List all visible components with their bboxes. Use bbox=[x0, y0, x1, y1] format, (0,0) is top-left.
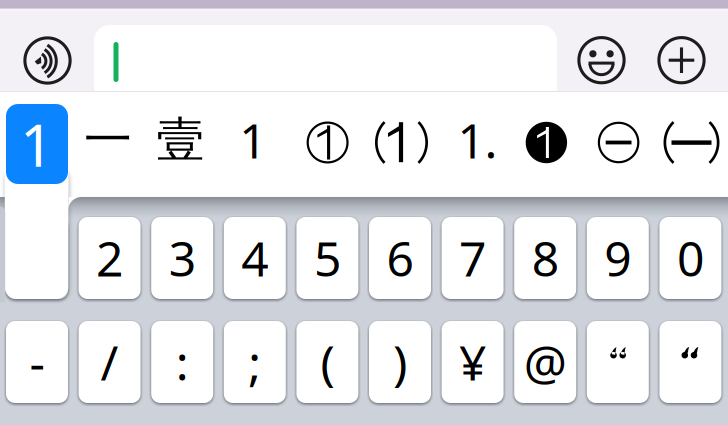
button[interactable]: Voice input bbox=[19, 32, 75, 88]
button[interactable]: ¥ bbox=[442, 321, 504, 403]
button[interactable]: 壹 bbox=[144, 100, 216, 180]
staticText: 7 bbox=[459, 226, 486, 290]
button[interactable]: Parenthesised yi bbox=[658, 102, 724, 182]
staticText: 1 bbox=[20, 105, 54, 183]
staticText: 0 bbox=[677, 226, 704, 290]
staticText: 壹 bbox=[156, 110, 204, 169]
button[interactable]: ( bbox=[296, 321, 358, 403]
button[interactable]: : bbox=[151, 321, 213, 403]
button[interactable]: - bbox=[6, 321, 68, 403]
button[interactable] bbox=[659, 321, 721, 403]
staticText: ; bbox=[248, 330, 261, 394]
button[interactable] bbox=[587, 321, 649, 403]
staticText: ) bbox=[393, 330, 407, 394]
staticText: 6 bbox=[386, 226, 413, 290]
button[interactable]: 9 bbox=[587, 217, 649, 299]
button[interactable]: 1. bbox=[441, 100, 513, 180]
button[interactable]: Circled minus bbox=[586, 102, 652, 182]
button[interactable]: Circled one bbox=[295, 102, 361, 182]
button[interactable]: 1 bbox=[217, 100, 289, 180]
staticText: 9 bbox=[604, 226, 631, 290]
button[interactable]: 1 bbox=[6, 104, 68, 184]
staticText: 3 bbox=[169, 226, 196, 290]
button[interactable]: ; bbox=[224, 321, 286, 403]
button[interactable]: 8 bbox=[514, 217, 576, 299]
staticText: 1. bbox=[457, 108, 497, 172]
staticText: 2 bbox=[96, 226, 123, 290]
staticText: 5 bbox=[314, 226, 341, 290]
staticText: ¥ bbox=[459, 330, 486, 394]
staticText: @ bbox=[524, 330, 567, 394]
button[interactable]: 3 bbox=[151, 217, 213, 299]
button[interactable]: 7 bbox=[442, 217, 504, 299]
staticText: : bbox=[176, 330, 189, 394]
button[interactable]: More bbox=[653, 32, 709, 88]
staticText: 1 bbox=[239, 108, 266, 172]
button[interactable]: 一 bbox=[72, 100, 144, 180]
button[interactable]: 5 bbox=[296, 217, 358, 299]
staticText: ( bbox=[320, 330, 334, 394]
button[interactable]: 4 bbox=[224, 217, 286, 299]
staticText: 8 bbox=[532, 226, 559, 290]
button[interactable]: 0 bbox=[659, 217, 721, 299]
staticText: - bbox=[29, 330, 44, 394]
button[interactable]: 1 bbox=[6, 217, 68, 299]
button[interactable]: Parenthesised one bbox=[368, 102, 434, 182]
staticText: 4 bbox=[241, 226, 268, 290]
button[interactable]: / bbox=[79, 321, 141, 403]
button[interactable]: 6 bbox=[369, 217, 431, 299]
staticText: 一 bbox=[84, 110, 132, 169]
staticText: / bbox=[101, 330, 119, 394]
button[interactable]: Emoji bbox=[573, 32, 629, 88]
button[interactable]: Filled circled one bbox=[513, 102, 579, 182]
button[interactable]: 2 bbox=[79, 217, 141, 299]
button[interactable]: ) bbox=[369, 321, 431, 403]
button[interactable]: @ bbox=[514, 321, 576, 403]
